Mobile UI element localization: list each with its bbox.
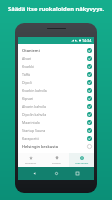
button[interactable]: Alvarin kahvila xyxy=(18,102,94,110)
staticText: Säädä itse ruokaloiden näkyvyys. xyxy=(0,5,112,13)
staticText: Alvarin kahvila xyxy=(22,104,87,109)
staticText: Täffä xyxy=(22,72,87,77)
button[interactable]: Helsingin keskusta xyxy=(18,142,94,150)
button[interactable]: Alvari xyxy=(18,54,94,62)
staticText: 14:34 xyxy=(82,38,92,43)
staticText: Kipsari xyxy=(22,96,87,101)
button[interactable]: Täffä xyxy=(18,70,94,78)
staticText: Kvarkki xyxy=(22,64,87,69)
staticText: Helsingin keskusta xyxy=(22,144,87,149)
button[interactable]: Karaportti xyxy=(18,134,94,142)
button[interactable]: SUOSIKIT xyxy=(18,153,44,167)
button[interactable]: Kvarkin kahvila xyxy=(18,86,94,94)
button[interactable]: Kipsari xyxy=(18,94,94,102)
button[interactable]: Recent apps xyxy=(73,169,82,178)
button[interactable]: Dipoli xyxy=(18,78,94,86)
staticText: SUOSIKIT xyxy=(25,161,37,164)
button[interactable]: Kvarkki xyxy=(18,62,94,70)
staticText: Kvarkin kahvila xyxy=(22,88,87,93)
staticText: KARTTA xyxy=(52,161,61,164)
staticText: Karaportti xyxy=(22,136,87,141)
staticText: Dipolin kahvila xyxy=(22,112,87,117)
button[interactable]: Otaniemi xyxy=(18,46,94,54)
staticText: Otaniemi xyxy=(22,48,87,53)
button[interactable]: Home xyxy=(52,169,61,178)
staticText: Maarintalo xyxy=(22,120,87,125)
staticText: Startup Sauna xyxy=(22,128,87,133)
button[interactable]: Maarintalo xyxy=(18,118,94,126)
button[interactable]: ASETUKSET xyxy=(69,153,94,167)
staticText: Dipoli xyxy=(22,80,87,85)
button[interactable]: Startup Sauna xyxy=(18,126,94,134)
button[interactable]: KARTTA xyxy=(44,153,69,167)
button[interactable]: Back xyxy=(30,169,39,178)
button[interactable]: Dipolin kahvila xyxy=(18,110,94,118)
staticText: Alvari xyxy=(22,56,87,61)
staticText: ASETUKSET xyxy=(75,161,89,164)
